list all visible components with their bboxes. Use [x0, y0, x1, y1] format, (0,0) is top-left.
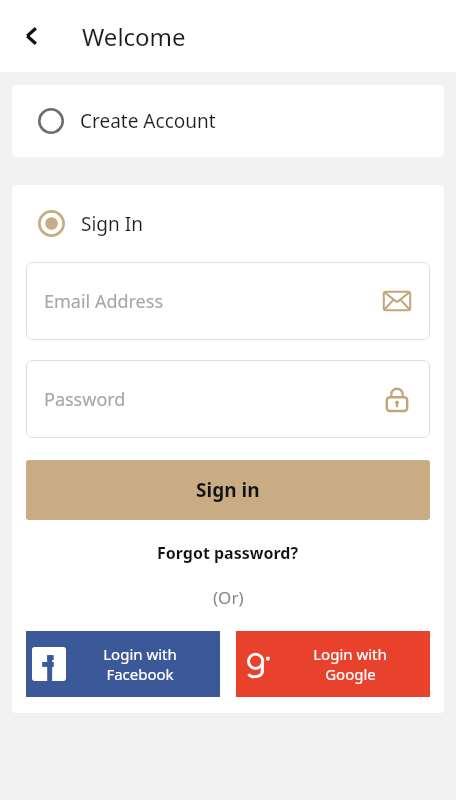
staticText: Welcome	[82, 20, 186, 53]
other: Email	[382, 286, 412, 316]
staticText: Sign In	[81, 211, 143, 237]
staticText: Create Account	[80, 108, 216, 134]
button[interactable]: Sign in	[26, 460, 430, 520]
button[interactable]: Back	[8, 12, 56, 60]
button[interactable]: Password	[26, 360, 430, 438]
button[interactable]: Login with Google	[236, 631, 430, 697]
staticText: Password	[44, 387, 382, 412]
staticText: Sign in	[196, 477, 260, 503]
staticText: Login with	[313, 644, 387, 664]
staticText: Google	[325, 664, 376, 684]
other: Login with Google	[242, 647, 276, 681]
staticText: Forgot password?	[157, 542, 299, 564]
button[interactable]: Login with Facebook	[26, 631, 220, 697]
other: Password	[382, 384, 412, 414]
button[interactable]: Sign In	[12, 185, 444, 262]
staticText: Facebook	[106, 664, 174, 684]
staticText: (Or)	[213, 586, 244, 609]
other: Login with Facebook	[32, 647, 66, 681]
staticText: Login with	[103, 644, 177, 664]
button[interactable]: Forgot password?	[149, 540, 307, 566]
button[interactable]: Email Address	[26, 262, 430, 340]
button[interactable]: Create Account	[12, 85, 444, 157]
staticText: Email Address	[44, 289, 382, 314]
